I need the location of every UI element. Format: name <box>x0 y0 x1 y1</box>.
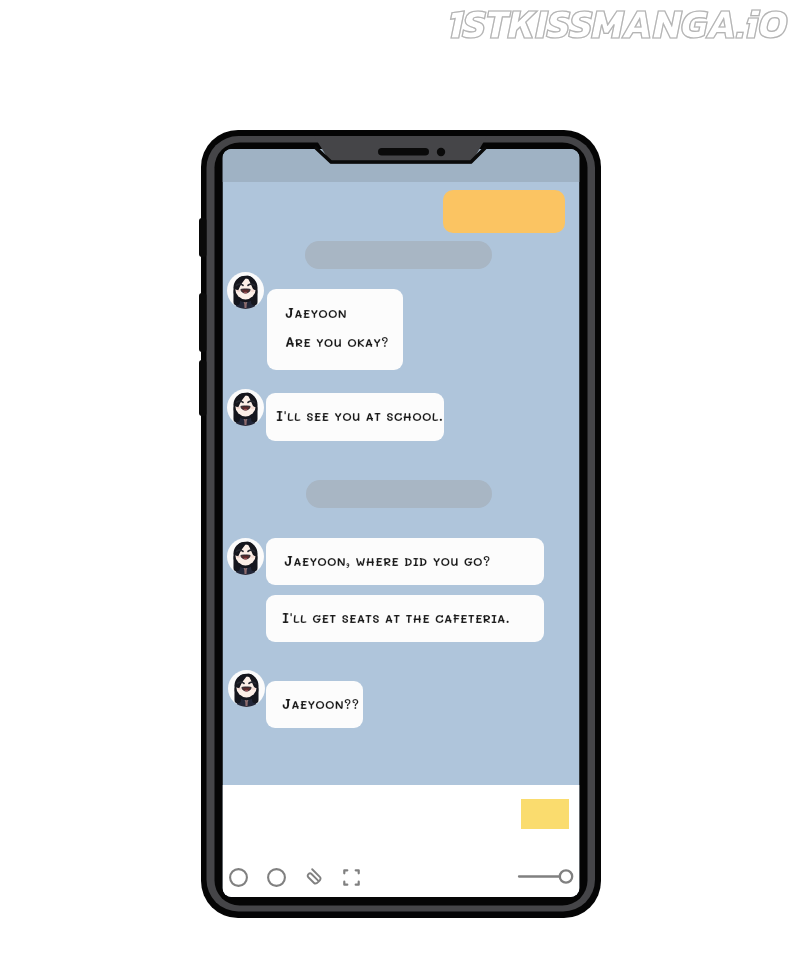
button[interactable]: I'LL SEE YOU AT SCHOOL. <box>266 393 444 441</box>
button[interactable]: Contact avatar <box>227 538 264 575</box>
staticText: I'LL SEE YOU AT SCHOOL. <box>276 406 444 424</box>
button[interactable]: JAEYOON <box>267 289 403 370</box>
staticText: I'LL GET SEATS AT THE CAFETERIA. <box>282 608 510 626</box>
button[interactable]: Contact avatar <box>227 389 264 426</box>
button[interactable]: I'LL GET SEATS AT THE CAFETERIA. <box>266 595 544 642</box>
button[interactable] <box>443 190 565 233</box>
staticText: JAEYOON?? <box>282 694 360 712</box>
button[interactable]: Contact avatar <box>227 272 264 309</box>
staticText: 1STKISSMANGA.iO <box>448 0 788 54</box>
button[interactable] <box>306 480 492 508</box>
staticText: JAEYOON <box>285 303 347 321</box>
button[interactable]: Send <box>514 864 576 889</box>
button[interactable]: Camera <box>229 868 248 887</box>
button[interactable]: Contact avatar <box>228 670 265 707</box>
button[interactable]: JAEYOON?? <box>266 681 363 728</box>
button[interactable] <box>305 241 492 269</box>
staticText: JAEYOON, WHERE DID YOU GO? <box>284 551 491 569</box>
button[interactable]: Gallery <box>267 868 286 887</box>
button[interactable]: Expand <box>342 868 361 887</box>
button[interactable]: JAEYOON, WHERE DID YOU GO? <box>266 538 544 585</box>
staticText: ARE YOU OKAY? <box>285 332 389 350</box>
button[interactable]: Attach file <box>305 868 324 887</box>
